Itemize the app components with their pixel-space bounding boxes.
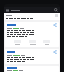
button[interactable]: Share	[5, 49, 59, 64]
button[interactable]	[28, 40, 37, 45]
button[interactable]	[13, 40, 22, 45]
other: Share	[53, 23, 57, 27]
button[interactable]: Menu	[6, 9, 9, 12]
button[interactable]: Share	[5, 22, 59, 47]
button[interactable]	[5, 66, 59, 72]
button[interactable]: Search	[54, 8, 58, 12]
other: Share	[53, 50, 57, 54]
button[interactable]	[42, 40, 51, 45]
